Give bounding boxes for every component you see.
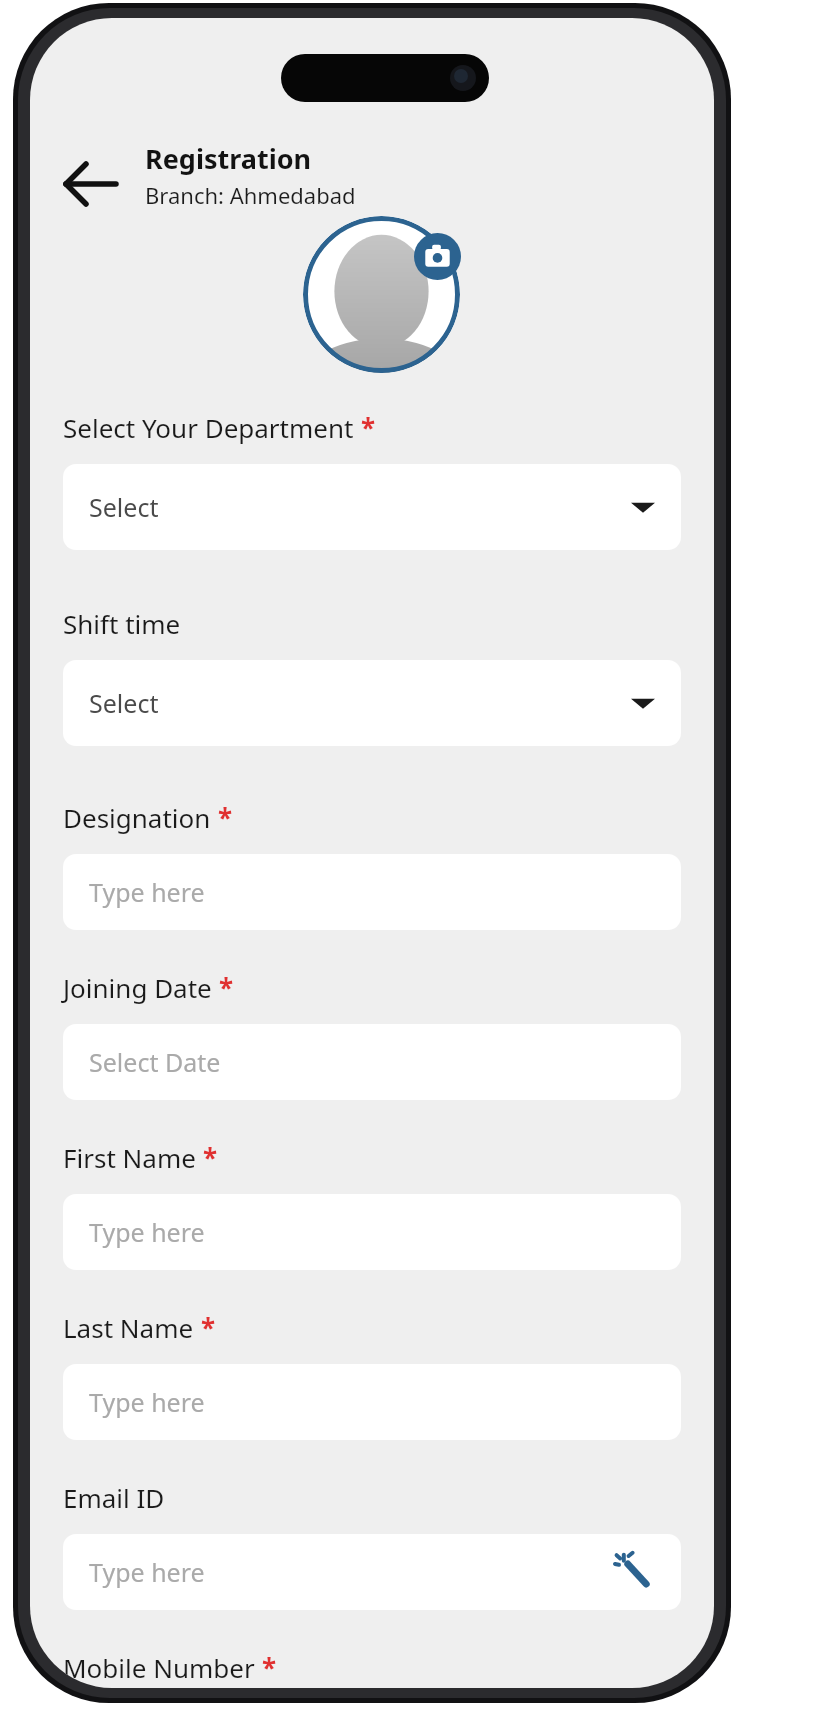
button[interactable]: Type here [63,1364,681,1440]
button[interactable]: Profile photo [303,216,460,373]
staticText: Select Date [89,1045,221,1079]
staticText: * [218,800,233,835]
staticText: Designation [63,800,211,835]
staticText: Type here [89,1215,205,1249]
staticText: Select [89,686,159,720]
button[interactable]: Auto fill [615,1552,655,1592]
button[interactable]: Select [63,464,681,550]
staticText: * [262,1650,277,1685]
staticText: * [201,1310,216,1345]
staticText: Branch: Ahmedabad [145,180,356,210]
staticText: Registration [145,140,312,177]
button[interactable]: Select Date [63,1024,681,1100]
staticText: * [219,970,234,1005]
staticText: Mobile Number [63,1650,255,1685]
staticText: Select [89,490,159,524]
button[interactable]: Select [63,660,681,746]
staticText: Joining Date [63,970,212,1005]
button[interactable]: Type here [63,1194,681,1270]
staticText: * [203,1140,218,1175]
staticText: Email ID [63,1480,165,1515]
button[interactable]: Change photo [414,233,461,280]
staticText: Last Name [63,1310,194,1345]
button[interactable]: Back [55,148,127,220]
staticText: Type here [89,1385,205,1419]
staticText: Select Your Department [63,410,354,445]
staticText: * [361,410,376,445]
staticText: Type here [89,875,205,909]
button[interactable]: Type here [63,1534,681,1610]
staticText: First Name [63,1140,196,1175]
staticText: Type here [89,1555,205,1589]
button[interactable]: Type here [63,854,681,930]
staticText: Shift time [63,606,181,641]
